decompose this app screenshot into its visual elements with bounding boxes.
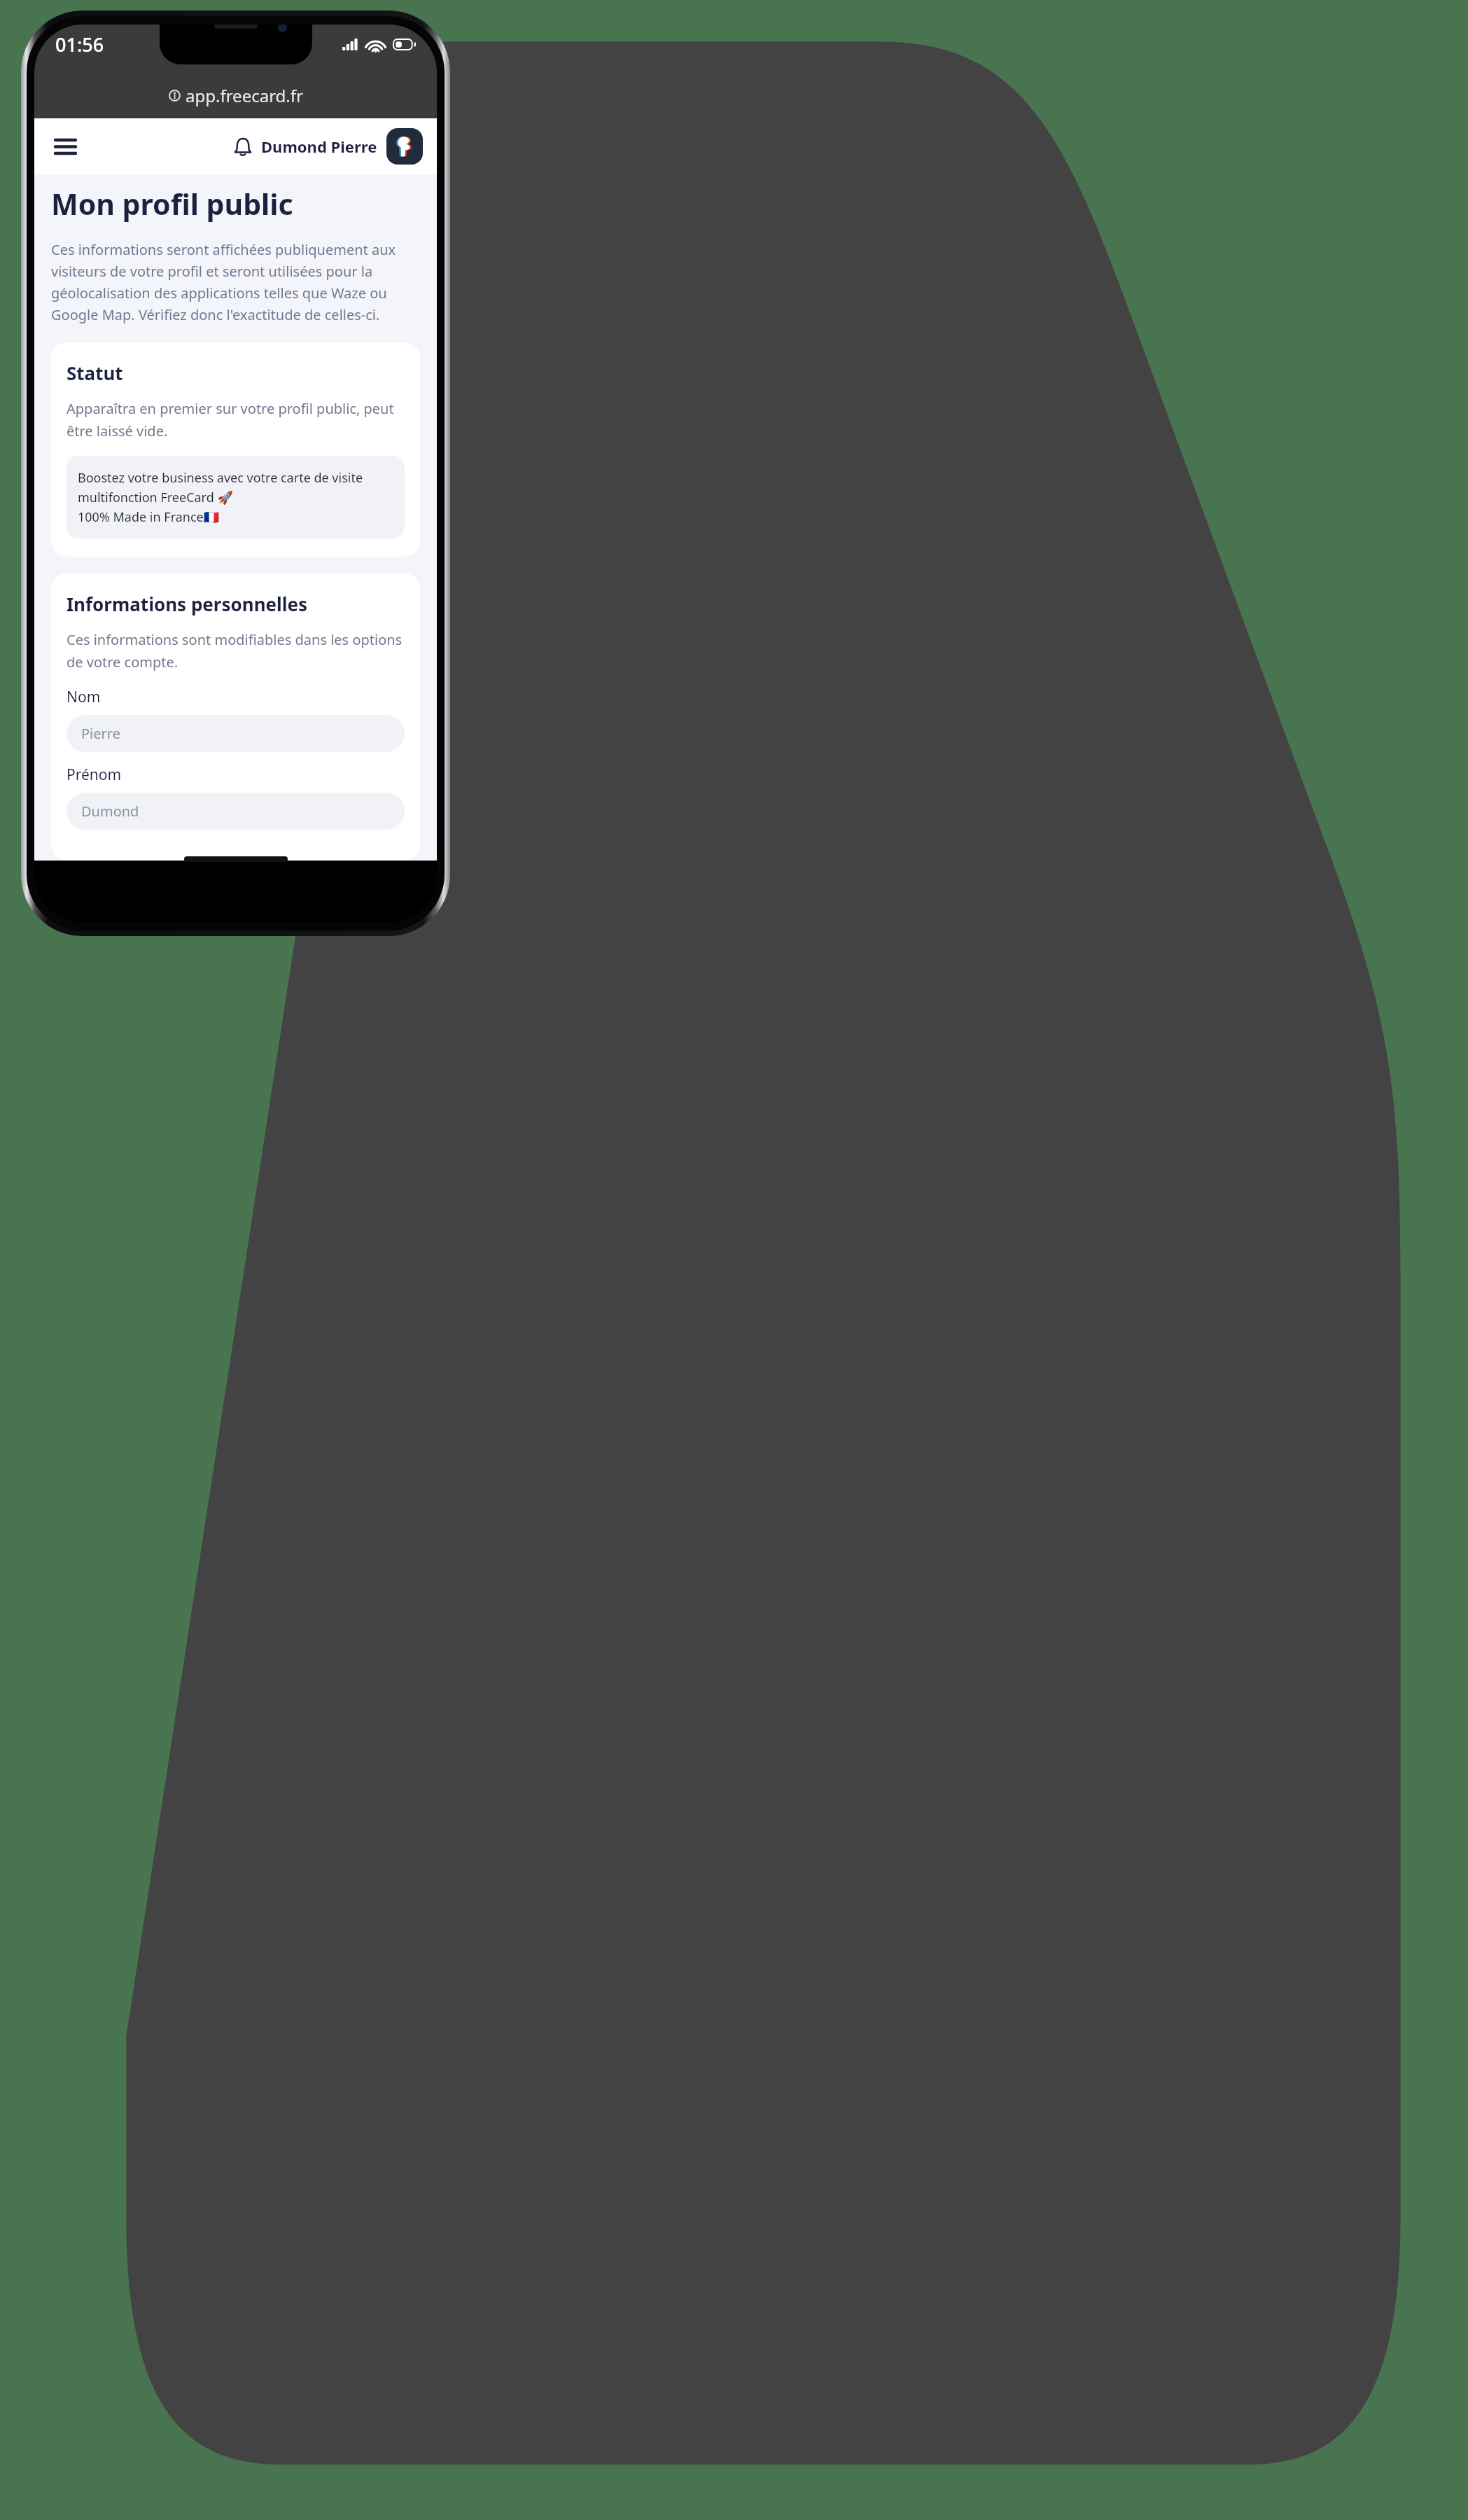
staticText: Mon profil public	[51, 184, 293, 223]
staticText: Prénom	[67, 765, 122, 785]
staticText: Statut	[67, 361, 123, 385]
staticText: Ces informations sont modifiables dans l…	[67, 630, 405, 671]
staticText: Nom	[67, 687, 101, 707]
staticText: Ces informations seront affichées publiq…	[51, 240, 420, 324]
staticText: Pierre	[81, 724, 120, 743]
staticText: Dumond	[81, 802, 139, 821]
button[interactable]: Profil	[386, 128, 423, 165]
button[interactable]: Boostez votre business avec votre carte …	[67, 456, 405, 538]
button[interactable]: Notifications	[228, 131, 258, 162]
staticText: 01:56	[55, 32, 104, 57]
staticText: Dumond Pierre	[261, 136, 377, 157]
staticText: Boostez votre business avec votre carte …	[78, 469, 393, 525]
button[interactable]: Pierre	[67, 715, 405, 752]
button[interactable]: Menu	[50, 131, 81, 162]
staticText: app.freecard.fr	[186, 84, 303, 107]
staticText: Informations personnelles	[67, 592, 308, 616]
staticText: Apparaîtra en premier sur votre profil p…	[67, 399, 405, 440]
button[interactable]: Dumond	[67, 793, 405, 830]
